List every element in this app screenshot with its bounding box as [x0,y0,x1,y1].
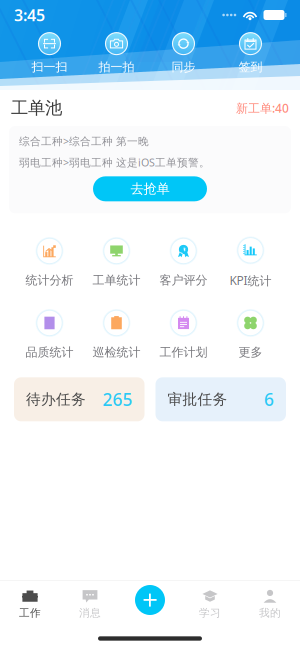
staticText: 工作 [19,606,41,619]
button[interactable]: 品质统计 [16,308,83,360]
button[interactable]: 去抢单 [93,176,207,201]
staticText: 统计分析 [25,273,73,288]
staticText: 更多 [238,345,262,360]
button[interactable]: 工作 [0,582,60,626]
button[interactable]: 工单统计 [83,236,150,288]
button[interactable]: KPI统计 [217,236,284,288]
staticText: 265 [102,388,132,411]
button[interactable]: 我的 [240,582,300,626]
staticText: 扫一扫 [31,60,67,74]
staticText: 3:45 [14,4,45,26]
staticText: 学习 [199,606,221,619]
staticText: 我的 [259,606,281,619]
button[interactable]: 消息 [60,582,120,626]
button[interactable]: 签到 [217,31,284,75]
staticText: 同步 [171,60,195,74]
staticText: 审批任务 [167,390,227,408]
button[interactable]: 拍一拍 [83,31,150,75]
button[interactable]: 扫一扫 [16,31,83,75]
staticText: 工单池 [11,97,62,119]
staticText: 弱电工种>弱电工种 这是iOS工单预警。 [19,155,210,169]
staticText: 巡检统计 [92,345,140,360]
button[interactable]: 更多 [217,308,284,360]
staticText: 签到 [238,60,262,74]
button[interactable]: 学习 [180,582,240,626]
button[interactable]: 工作计划 [150,308,217,360]
button[interactable]: 统计分析 [16,236,83,288]
staticText: 消息 [79,606,101,619]
staticText: 客户评分 [159,273,207,288]
button[interactable]: 新建 [134,584,166,616]
button[interactable]: 审批任务 [155,377,286,421]
staticText: 综合工种>综合工种 第一晚 [19,134,149,148]
button[interactable]: 同步 [150,31,217,75]
staticText: 品质统计 [25,345,73,360]
staticText: 拍一拍 [98,60,134,74]
staticText: 去抢单 [130,181,169,197]
staticText: KPI统计 [229,272,271,288]
staticText: 待办任务 [26,390,86,408]
staticText: 工作计划 [159,345,207,360]
staticText: 新工单:40 [236,100,289,116]
staticText: 工单统计 [92,273,140,288]
button[interactable]: 待办任务 [14,377,144,421]
button[interactable]: 客户评分 [150,236,217,288]
staticText: 6 [264,388,274,411]
button[interactable]: 巡检统计 [83,308,150,360]
